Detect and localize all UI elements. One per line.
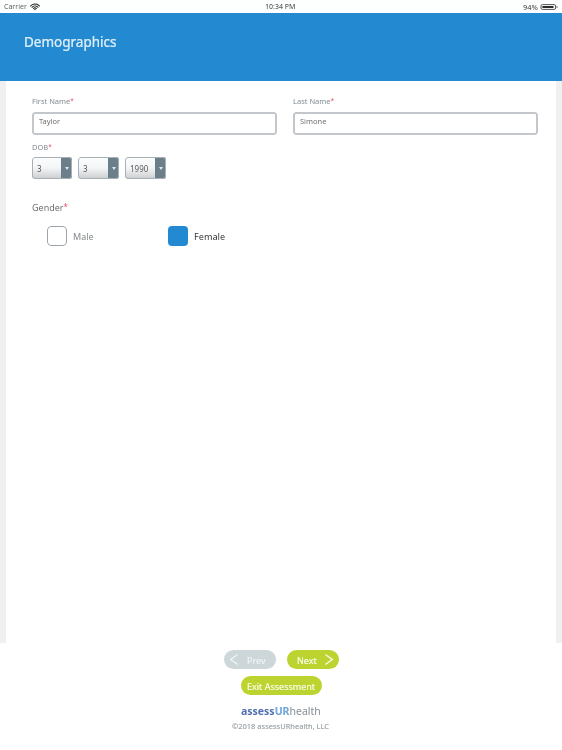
- staticText: Prev: [247, 654, 266, 666]
- staticText: 10:34 PM: [265, 2, 296, 12]
- staticText: 3: [83, 163, 88, 174]
- staticText: Demographics: [24, 33, 117, 51]
- button[interactable]: Taylor: [32, 112, 277, 135]
- button[interactable]: Next: [287, 650, 339, 669]
- staticText: Carrier: [4, 2, 27, 12]
- staticText: 1990: [130, 163, 149, 174]
- button[interactable]: Simone: [293, 112, 538, 135]
- staticText: DOB*: [32, 142, 52, 152]
- button[interactable]: Female: [168, 226, 226, 246]
- button[interactable]: Prev: [224, 650, 276, 669]
- button[interactable]: Male: [47, 226, 94, 246]
- staticText: Male: [73, 230, 94, 242]
- staticText: Next: [297, 654, 317, 666]
- button[interactable]: Select 1990: [125, 157, 166, 179]
- staticText: 94%: [523, 2, 538, 12]
- button[interactable]: Select 3: [78, 157, 119, 179]
- staticText: assessURhealth: [241, 704, 321, 718]
- staticText: ©2018 assessURhealth, LLC: [232, 721, 330, 731]
- staticText: Taylor: [39, 116, 61, 126]
- button[interactable]: Select 3: [32, 157, 72, 179]
- staticText: Simone: [300, 116, 327, 126]
- staticText: Female: [194, 230, 226, 242]
- staticText: Exit Assessment: [247, 680, 316, 692]
- staticText: Gender*: [32, 201, 68, 213]
- staticText: 3: [37, 163, 42, 174]
- button[interactable]: Exit Assessment: [241, 676, 322, 695]
- staticText: First Name*: [32, 96, 74, 106]
- staticText: Last Name*: [293, 96, 335, 106]
